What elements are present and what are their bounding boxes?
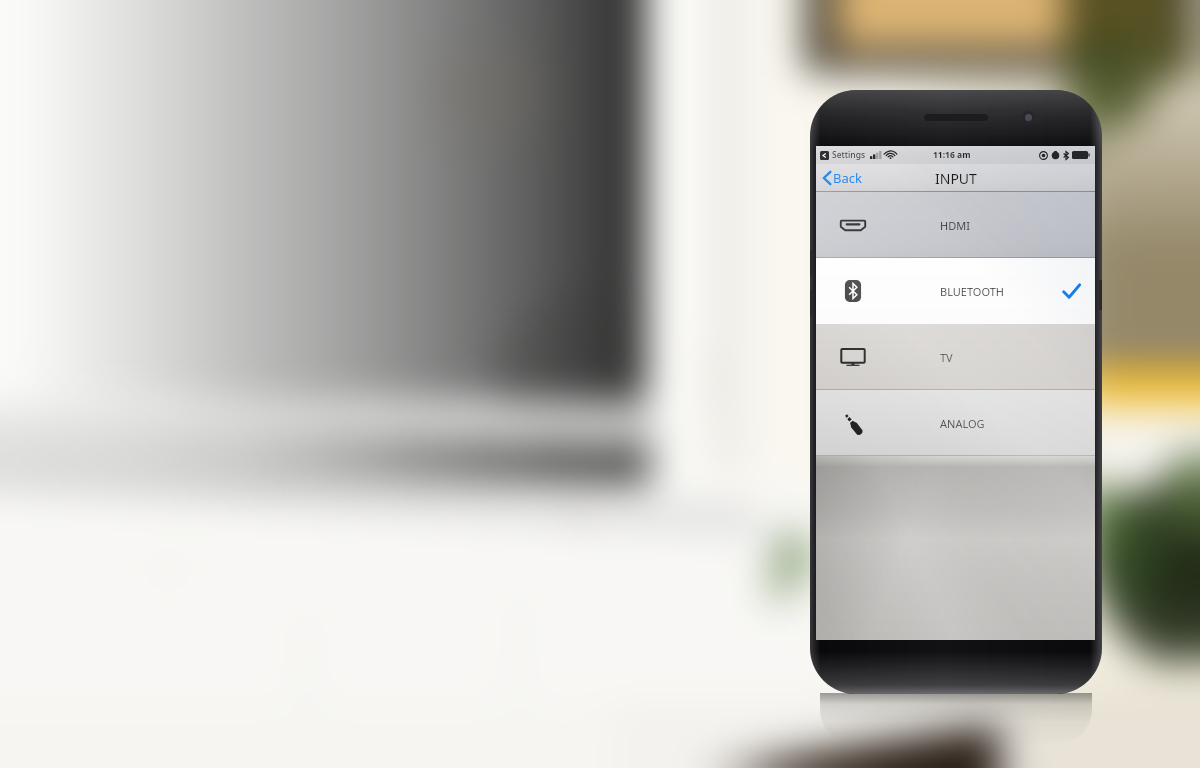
staticText: 11:16 am (933, 149, 971, 161)
button[interactable]: ANALOG (816, 390, 1095, 456)
button[interactable]: HDMI (816, 192, 1095, 258)
staticText: Back (833, 169, 862, 187)
button[interactable]: BLUETOOTH (816, 258, 1095, 324)
staticText: INPUT (935, 169, 977, 188)
staticText: TV (940, 350, 953, 365)
button[interactable]: TV (816, 324, 1095, 390)
staticText: BLUETOOTH (940, 284, 1004, 299)
staticText: Settings (832, 149, 866, 161)
staticText: ANALOG (940, 416, 985, 431)
staticText: HDMI (940, 218, 970, 233)
button[interactable]: Back (816, 166, 868, 190)
